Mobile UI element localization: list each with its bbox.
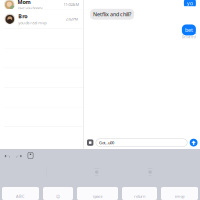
button[interactable]: Send [190,139,197,146]
staticText: Got...u00 [99,140,114,145]
staticText: ABC [16,193,25,199]
staticText: space [92,193,102,199]
staticText: Delivered [182,36,196,39]
button[interactable]: Redo [15,152,22,158]
staticText: 2:42PM [65,16,78,22]
button[interactable]: emoji [161,187,198,200]
staticText: ☺ [56,194,60,199]
button[interactable]: space [77,187,118,200]
staticText: 11:02AM [63,2,79,7]
staticText: return [134,193,145,199]
staticText: bet [185,26,193,33]
staticText: Mom [18,0,31,5]
button[interactable]: Got...u00 [96,139,187,146]
staticText: you da real mvp [18,20,46,25]
button[interactable]: Mom [0,0,83,14]
button[interactable]: Paste [27,152,34,159]
staticText: Netflix and chill? [93,11,131,18]
button[interactable]: Undo [4,152,11,158]
button[interactable]: return [122,187,157,200]
staticText: yo [187,0,193,7]
button[interactable]: Apps [87,139,93,146]
staticText: Bro [18,13,27,20]
staticText: love you honey [18,5,43,11]
staticText: emoji [174,193,184,199]
button[interactable]: ABC [2,187,39,200]
button[interactable]: ☺ [43,187,73,200]
button[interactable]: Bro [0,9,83,29]
